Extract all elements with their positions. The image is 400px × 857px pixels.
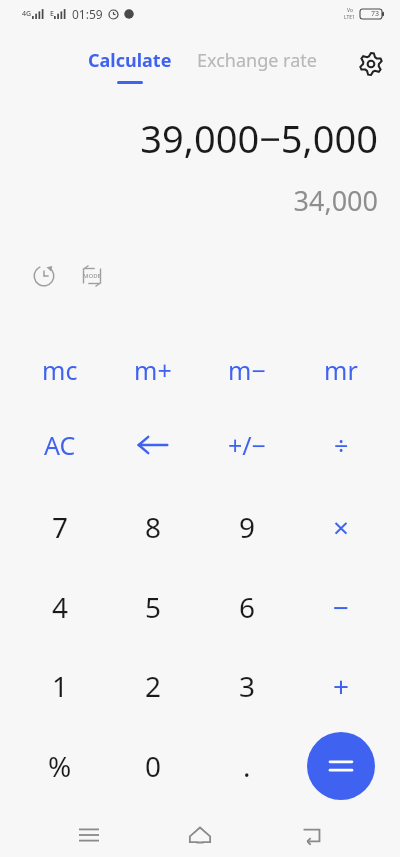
staticText: 39,000−5,000 bbox=[140, 112, 378, 164]
button[interactable]: ÷ bbox=[298, 413, 384, 477]
button[interactable]: Backspace bbox=[110, 413, 196, 477]
staticText: MODE bbox=[83, 272, 101, 280]
staticText: 73 bbox=[371, 9, 380, 19]
staticText: Vo bbox=[347, 7, 353, 14]
staticText: mr bbox=[324, 353, 358, 387]
button[interactable]: m− bbox=[204, 338, 290, 402]
button[interactable]: mr bbox=[298, 338, 384, 402]
staticText: 4 bbox=[52, 588, 69, 626]
staticText: 6 bbox=[239, 588, 256, 626]
staticText: m+ bbox=[134, 353, 172, 387]
staticText: + bbox=[333, 667, 350, 705]
button[interactable]: − bbox=[298, 570, 384, 644]
staticText: 9 bbox=[239, 508, 256, 546]
staticText: 7 bbox=[52, 508, 69, 546]
staticText: × bbox=[333, 508, 350, 546]
button[interactable]: 3 bbox=[204, 649, 290, 723]
button[interactable]: Back bbox=[289, 813, 333, 857]
staticText: 01:59 bbox=[72, 6, 103, 22]
button[interactable]: 8 bbox=[110, 490, 196, 564]
staticText: Calculate bbox=[88, 48, 172, 73]
staticText: +/− bbox=[228, 428, 266, 462]
staticText: E bbox=[50, 9, 54, 19]
button[interactable]: 5 bbox=[110, 570, 196, 644]
staticText: 3 bbox=[239, 667, 256, 705]
staticText: AC bbox=[44, 428, 76, 462]
button[interactable]: . bbox=[204, 729, 290, 803]
button[interactable]: 9 bbox=[204, 490, 290, 564]
staticText: 8 bbox=[145, 508, 162, 546]
staticText: Exchange rate bbox=[197, 48, 317, 73]
staticText: 0 bbox=[145, 747, 162, 785]
button[interactable]: 2 bbox=[110, 649, 196, 723]
staticText: 5 bbox=[145, 588, 162, 626]
button[interactable]: Home bbox=[178, 813, 222, 857]
button[interactable]: Mode bbox=[74, 258, 110, 294]
staticText: 4G bbox=[22, 9, 32, 19]
button[interactable]: m+ bbox=[110, 338, 196, 402]
staticText: 34,000 bbox=[293, 182, 378, 219]
staticText: − bbox=[333, 588, 350, 626]
button[interactable]: AC bbox=[17, 413, 103, 477]
staticText: 2 bbox=[145, 667, 162, 705]
button[interactable]: Equals bbox=[298, 729, 384, 803]
button[interactable]: 6 bbox=[204, 570, 290, 644]
button[interactable]: 0 bbox=[110, 729, 196, 803]
button[interactable]: 4 bbox=[17, 570, 103, 644]
staticText: LTE1 bbox=[344, 14, 355, 21]
button[interactable]: Settings bbox=[353, 46, 389, 82]
button[interactable]: History bbox=[26, 258, 62, 294]
button[interactable]: % bbox=[17, 729, 103, 803]
button[interactable]: Recents bbox=[67, 813, 111, 857]
button[interactable]: 1 bbox=[17, 649, 103, 723]
staticText: mc bbox=[42, 353, 78, 387]
button[interactable]: +/− bbox=[204, 413, 290, 477]
staticText: . bbox=[243, 747, 251, 785]
staticText: % bbox=[48, 747, 72, 785]
staticText: 1 bbox=[52, 667, 69, 705]
button[interactable]: + bbox=[298, 649, 384, 723]
button[interactable]: 7 bbox=[17, 490, 103, 564]
button[interactable]: Calculate bbox=[78, 42, 182, 90]
button[interactable]: mc bbox=[17, 338, 103, 402]
button[interactable]: × bbox=[298, 490, 384, 564]
staticText: m− bbox=[228, 353, 266, 387]
button[interactable]: Exchange rate bbox=[197, 42, 327, 79]
staticText: ÷ bbox=[334, 428, 349, 462]
